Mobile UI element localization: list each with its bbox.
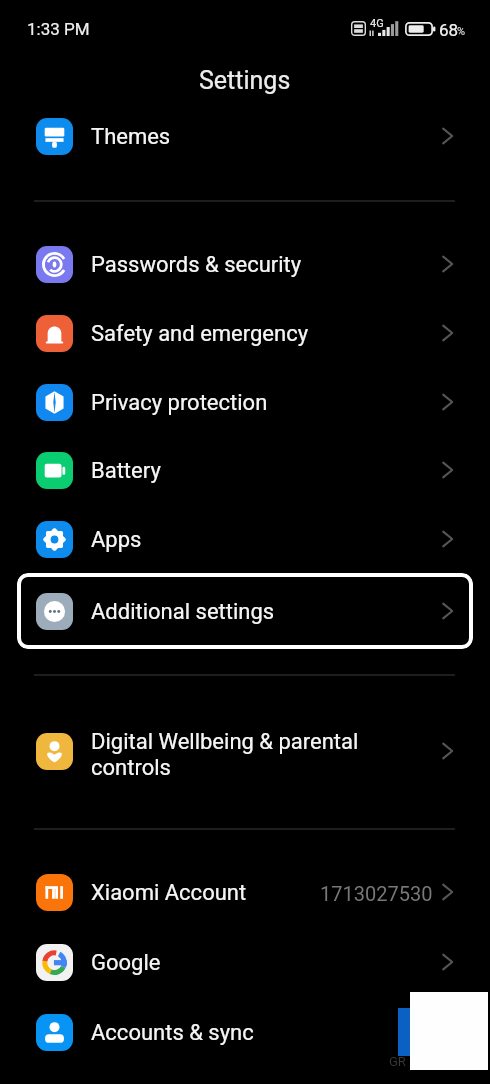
staticText: Google [91,950,161,976]
staticText: 68 [439,20,459,40]
staticText: Apps [91,527,142,553]
button[interactable] [0,505,490,573]
staticText: 1:33 PM [27,19,90,39]
button[interactable] [0,368,490,436]
staticText: 1713027530 [320,882,433,905]
button[interactable] [0,230,490,298]
button[interactable] [0,436,490,504]
staticText: Additional settings [91,599,275,625]
staticText: Digital Wellbeing & parental controls [91,729,359,780]
staticText: % [457,25,466,38]
staticText: Settings [199,66,291,95]
staticText: GR [389,1054,406,1069]
staticText: Privacy protection [91,390,268,416]
staticText: 4G [370,17,384,30]
button[interactable] [0,299,490,367]
staticText: Passwords & security [91,252,302,278]
button[interactable] [17,573,473,649]
button[interactable] [0,102,490,170]
staticText: Accounts & sync [91,1020,254,1046]
staticText: Battery [91,458,161,484]
button[interactable] [0,998,490,1066]
button[interactable] [0,709,490,793]
staticText: Safety and emergency [91,321,309,347]
staticText: Themes [91,124,171,150]
button[interactable] [0,928,490,996]
button[interactable] [0,858,490,926]
staticText: Xiaomi Account [91,880,247,906]
